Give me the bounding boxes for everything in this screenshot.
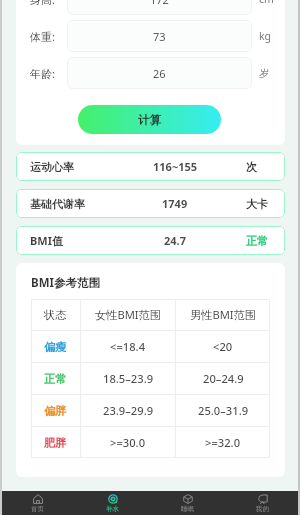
button[interactable]: 计算 [78, 105, 221, 134]
button[interactable]: Home [0, 491, 75, 515]
staticText: 岁 [259, 67, 270, 80]
staticText: 172 [150, 0, 169, 7]
staticText: 运动心率 [30, 160, 74, 174]
button[interactable]: 172 [67, 0, 252, 15]
button[interactable]: BMI值 [16, 226, 285, 255]
staticText: 1749 [162, 196, 188, 211]
staticText: 年龄: [30, 66, 55, 81]
staticText: 身高: [30, 0, 55, 7]
staticText: 补水 [106, 505, 119, 513]
button[interactable]: Hydration [75, 491, 150, 515]
button[interactable]: 基础代谢率 [16, 189, 285, 218]
staticText: 偏胖 [44, 404, 67, 418]
staticText: 男性BMI范围 [190, 307, 256, 322]
staticText: <20 [213, 339, 233, 354]
staticText: 睡眠 [181, 505, 194, 513]
staticText: 24.7 [164, 233, 186, 248]
button[interactable]: 73 [67, 20, 252, 52]
button[interactable]: Profile [225, 491, 300, 515]
staticText: 大卡 [246, 197, 268, 211]
button[interactable]: 26 [67, 57, 252, 89]
button[interactable]: 运动心率 [16, 152, 285, 181]
staticText: BMI值 [30, 233, 63, 248]
staticText: 我的 [256, 505, 269, 513]
staticText: 73 [153, 29, 166, 44]
staticText: 计算 [138, 113, 161, 127]
staticText: 25.0–31.9 [198, 403, 249, 418]
button[interactable]: Sleep [150, 491, 225, 515]
staticText: kg [259, 29, 272, 43]
staticText: 首页 [31, 505, 44, 513]
staticText: 23.9–29.9 [103, 403, 154, 418]
staticText: 基础代谢率 [30, 197, 85, 211]
staticText: 20–24.9 [203, 371, 244, 386]
staticText: cm [259, 0, 274, 6]
staticText: 26 [153, 66, 166, 81]
staticText: 肥胖 [44, 436, 67, 450]
staticText: BMI参考范围 [31, 275, 100, 291]
staticText: >=30.0 [110, 435, 146, 450]
staticText: 次 [246, 160, 257, 174]
staticText: 体重: [30, 29, 55, 44]
staticText: 偏瘦 [44, 340, 67, 354]
staticText: <=18.4 [110, 339, 146, 354]
staticText: 正常 [246, 234, 268, 248]
staticText: 18.5–23.9 [103, 371, 154, 386]
staticText: >=32.0 [205, 435, 241, 450]
staticText: 正常 [44, 372, 67, 386]
staticText: 女性BMI范围 [95, 307, 161, 322]
staticText: 状态 [44, 308, 67, 322]
staticText: 116~155 [153, 159, 198, 174]
